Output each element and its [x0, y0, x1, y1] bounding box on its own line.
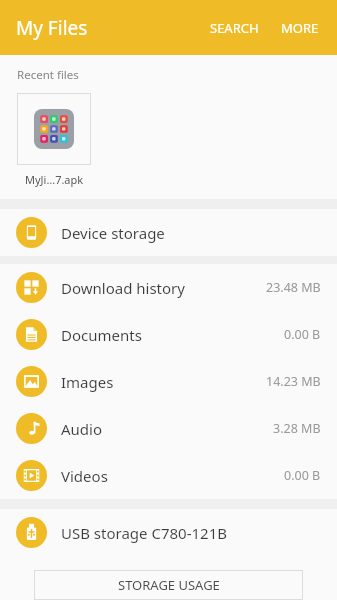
button[interactable]: MyJi…7.apk	[17, 93, 91, 187]
staticText: Recent files	[17, 67, 79, 83]
other: Videos	[16, 460, 47, 491]
other: Images	[16, 366, 47, 397]
button[interactable]: MORE	[275, 13, 325, 43]
other: Download history	[16, 272, 47, 303]
staticText: 3.28 MB	[273, 420, 321, 437]
staticText: Download history	[61, 278, 266, 298]
button[interactable]: STORAGE USAGE	[34, 570, 303, 600]
button[interactable]: Audio	[0, 405, 337, 452]
button[interactable]: Videos	[0, 452, 337, 499]
staticText: 0.00 B	[284, 326, 321, 343]
button[interactable]: Device storage	[0, 209, 337, 256]
staticText: MORE	[281, 19, 319, 37]
staticText: MyJi…7.apk	[25, 172, 84, 187]
staticText: My Files	[16, 15, 88, 41]
other: Documents	[16, 319, 47, 350]
other: USB storage	[16, 517, 47, 548]
button[interactable]: Documents	[0, 311, 337, 358]
staticText: SEARCH	[210, 19, 259, 37]
staticText: 14.23 MB	[266, 373, 321, 390]
button[interactable]: USB storage	[0, 509, 337, 556]
other: Device storage	[16, 217, 47, 248]
button[interactable]: Download history	[0, 264, 337, 311]
staticText: STORAGE USAGE	[118, 576, 220, 594]
other: Audio	[16, 413, 47, 444]
staticText: USB storage C780-121B	[61, 523, 321, 543]
staticText: 0.00 B	[284, 467, 321, 484]
staticText: Audio	[61, 419, 273, 439]
staticText: Videos	[61, 466, 284, 486]
staticText: Documents	[61, 325, 284, 345]
staticText: Device storage	[61, 223, 321, 243]
button[interactable]: Images	[0, 358, 337, 405]
button[interactable]: SEARCH	[204, 13, 265, 43]
staticText: 23.48 MB	[266, 279, 321, 296]
staticText: Images	[61, 372, 266, 392]
